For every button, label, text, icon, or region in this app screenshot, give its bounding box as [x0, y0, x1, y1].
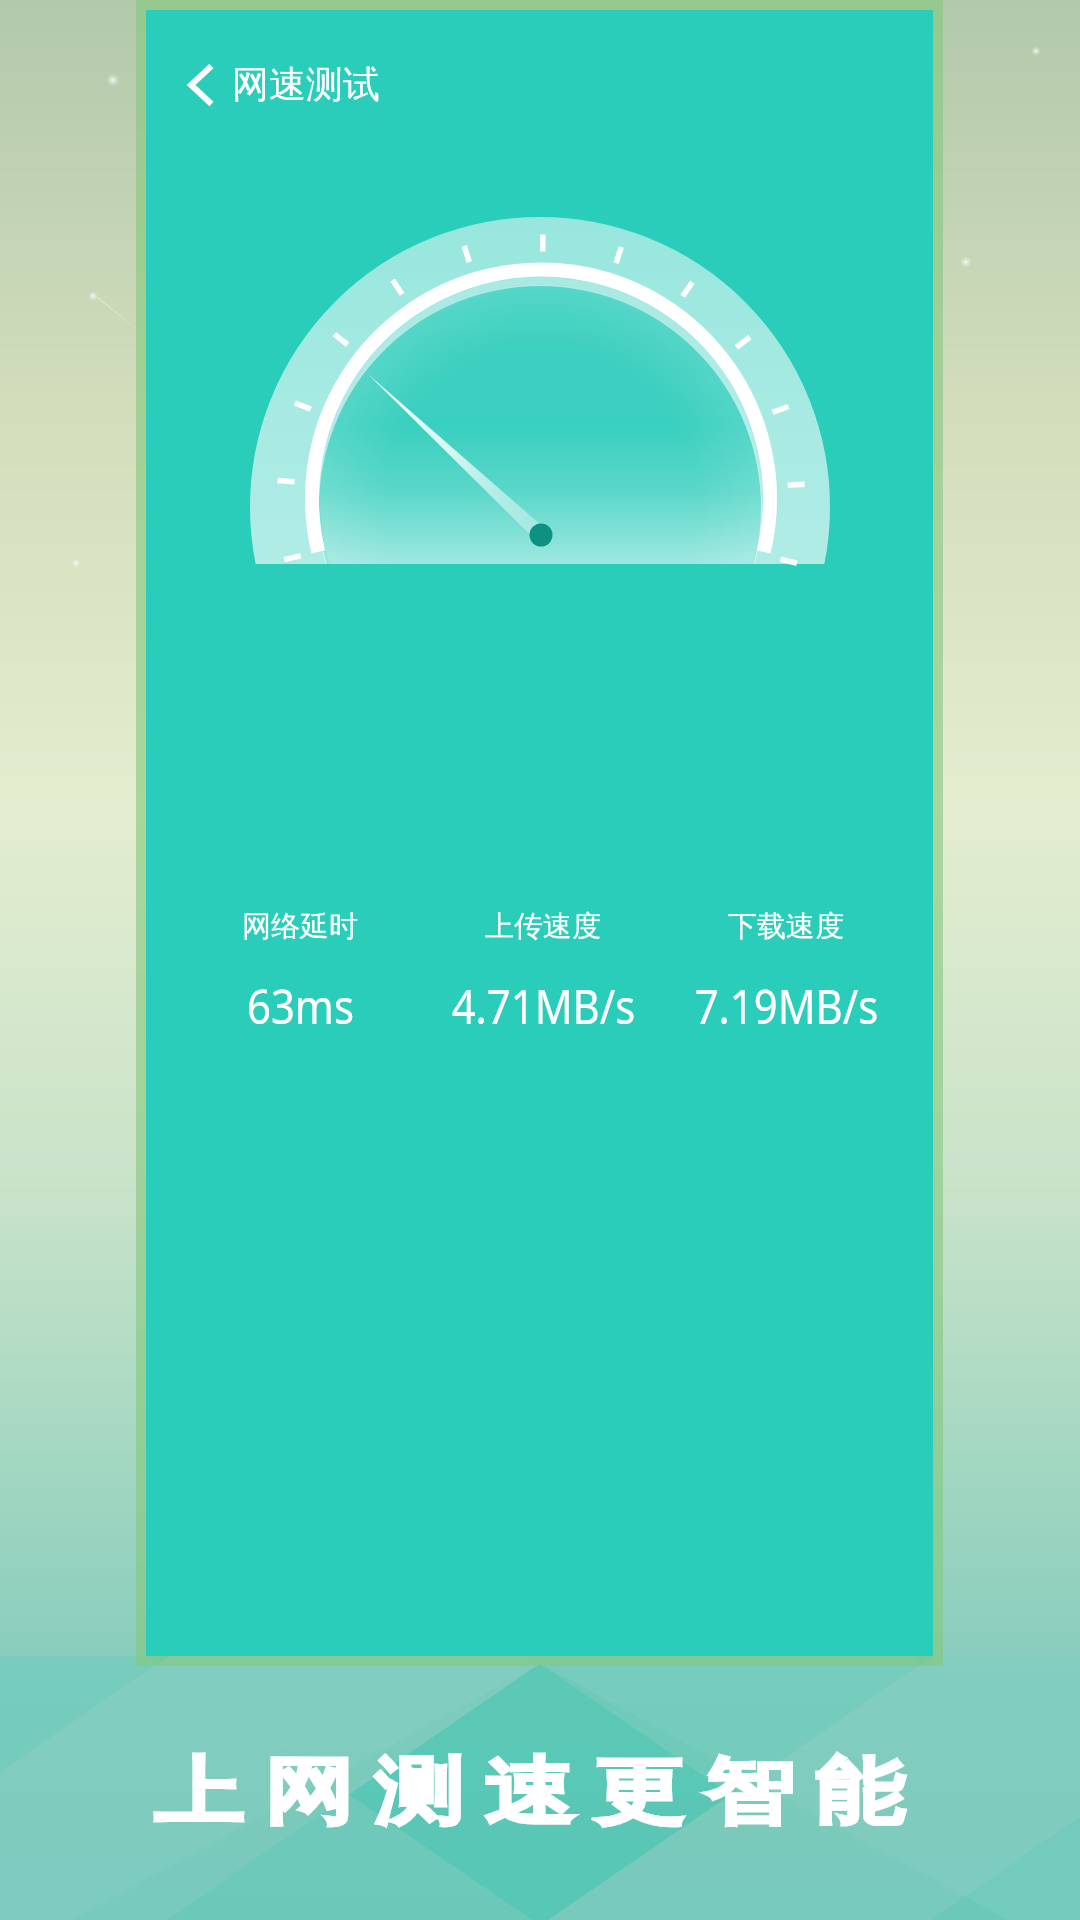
other: Back: [188, 63, 214, 107]
button[interactable]: 下载速度: [656, 908, 916, 1009]
staticText: 下载速度: [728, 908, 844, 945]
staticText: 上传速度: [485, 908, 601, 945]
staticText: 网速测试: [232, 61, 380, 108]
staticText: 上网测速更智能: [143, 1746, 914, 1838]
button[interactable]: Back: [180, 55, 370, 114]
button[interactable]: 上传速度: [413, 908, 673, 1009]
staticText: 网络延时: [242, 908, 358, 945]
staticText: 4.71MB/s: [451, 974, 636, 1038]
staticText: 63ms: [247, 974, 354, 1038]
button[interactable]: 网络延时: [170, 908, 430, 1009]
staticText: 7.19MB/s: [694, 974, 879, 1038]
